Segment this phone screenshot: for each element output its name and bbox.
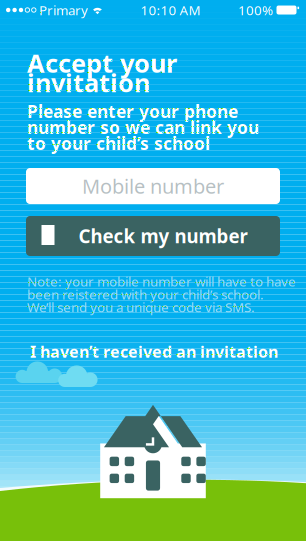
button[interactable]: Check my number <box>26 216 280 256</box>
button[interactable]: Mobile number <box>26 168 280 204</box>
staticText: I haven’t received an invitation <box>30 341 278 362</box>
staticText: number so we can link you <box>27 116 259 139</box>
staticText: We’ll send you a unique code via SMS. <box>27 298 255 316</box>
staticText: Please enter your phone <box>27 100 238 123</box>
staticText: invitation <box>27 66 150 99</box>
staticText: been reistered with your child’s school. <box>27 285 264 303</box>
staticText: to your child’s school <box>27 132 210 155</box>
staticText: 100% <box>238 1 273 19</box>
staticText: Check my number <box>78 224 247 248</box>
staticText: Mobile number <box>82 173 224 199</box>
staticText: Note: your mobile number will have to ha… <box>27 272 296 290</box>
staticText: Accept your <box>27 46 177 80</box>
staticText: Primary <box>36 1 88 19</box>
button[interactable]: I haven’t received an invitation <box>0 341 278 362</box>
staticText: 10:10 AM <box>140 1 200 19</box>
